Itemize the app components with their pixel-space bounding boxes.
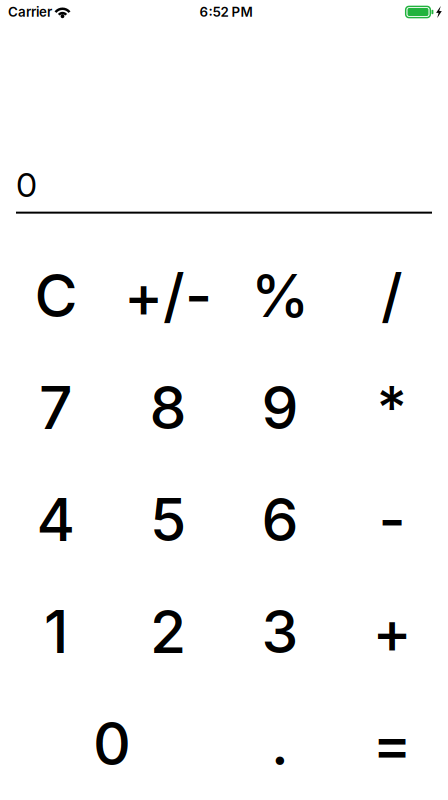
staticText: 7	[39, 372, 73, 443]
staticText: 0	[16, 164, 37, 205]
staticText: *	[376, 372, 407, 443]
button[interactable]: 2	[112, 576, 224, 688]
button[interactable]: 8	[112, 352, 224, 464]
button[interactable]: /	[336, 240, 448, 352]
staticText: +/-	[124, 260, 212, 331]
staticText: =	[372, 708, 411, 779]
button[interactable]: 4	[0, 464, 112, 576]
button[interactable]: C	[0, 240, 112, 352]
staticText: 6:52 PM	[199, 4, 252, 20]
staticText: C	[34, 260, 77, 331]
button[interactable]: 6	[224, 464, 336, 576]
button[interactable]: 1	[0, 576, 112, 688]
staticText: 3	[261, 596, 298, 667]
button[interactable]: 9	[224, 352, 336, 464]
staticText: 4	[36, 484, 75, 555]
button[interactable]: -	[336, 464, 448, 576]
button[interactable]: *	[336, 352, 448, 464]
staticText: 1	[44, 596, 68, 667]
staticText: 6	[261, 484, 298, 555]
button[interactable]: =	[336, 688, 448, 800]
button[interactable]: 3	[224, 576, 336, 688]
staticText: 5	[150, 484, 186, 555]
button[interactable]: 0	[0, 688, 224, 800]
button[interactable]: +/-	[112, 240, 224, 352]
button[interactable]: .	[224, 688, 336, 800]
button[interactable]: +	[336, 576, 448, 688]
staticText: .	[271, 708, 289, 779]
staticText: 9	[261, 372, 298, 443]
staticText: %	[251, 260, 309, 331]
button[interactable]: 5	[112, 464, 224, 576]
staticText: Carrier	[8, 4, 52, 20]
button[interactable]: 7	[0, 352, 112, 464]
staticText: -	[378, 484, 405, 555]
staticText: 2	[150, 596, 186, 667]
staticText: 0	[93, 708, 131, 779]
staticText: /	[381, 260, 403, 331]
staticText: +	[372, 596, 411, 667]
button[interactable]: %	[224, 240, 336, 352]
staticText: 8	[149, 372, 186, 443]
